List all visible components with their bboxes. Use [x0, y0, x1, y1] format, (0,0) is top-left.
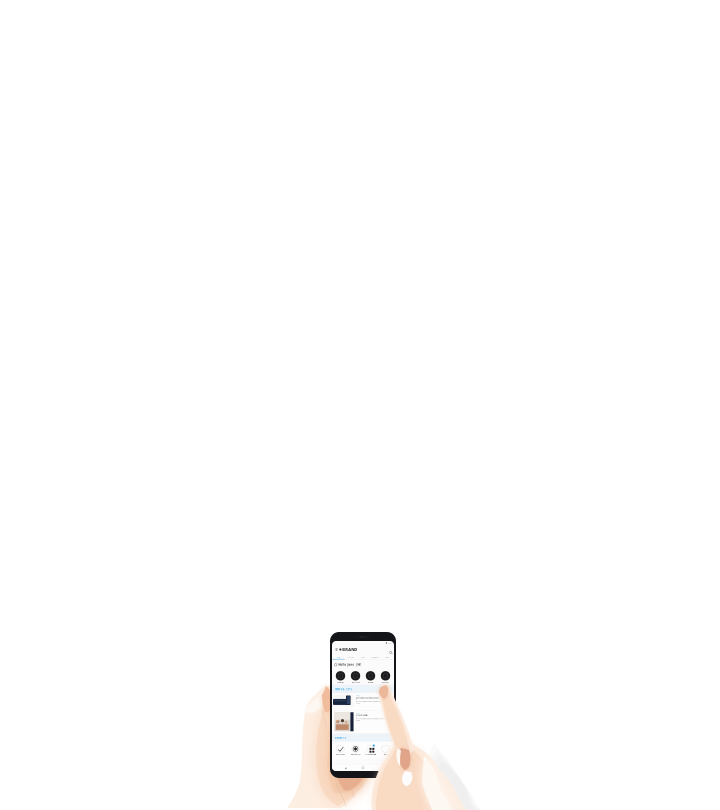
staticText: Contact Us — [337, 682, 344, 683]
staticText: Discover the tips and tricks that make e… — [356, 701, 389, 704]
button[interactable]: Contact Us — [333, 671, 348, 683]
button[interactable]: Back — [376, 765, 384, 771]
button[interactable]: Benefits — [363, 671, 378, 683]
staticText: Account and bills — [365, 754, 376, 755]
button[interactable]: Menu — [333, 645, 339, 654]
staticText: My account — [351, 682, 359, 683]
staticText: Benefits — [367, 682, 373, 683]
staticText: Hello Jane | Hi! — [338, 663, 361, 666]
staticText: BRAND — [341, 647, 357, 652]
staticText: Around the family — [356, 714, 368, 716]
staticText: My services — [336, 754, 345, 755]
staticText: NEWS — [356, 695, 360, 697]
staticText: › — [390, 736, 391, 739]
button[interactable]: Recents — [341, 765, 349, 771]
button[interactable]: More — [378, 745, 393, 755]
staticText: HOME — [337, 656, 341, 658]
staticText: BENEFITS — [334, 736, 345, 739]
button[interactable]: SHOP — [357, 654, 369, 659]
button[interactable]: Home — [359, 765, 367, 771]
button[interactable]: Offers for you — [348, 745, 363, 755]
button[interactable]: NEWS — [332, 693, 394, 710]
staticText: NEWS — [356, 712, 360, 714]
staticText: NEWS & TIPS — [334, 687, 351, 691]
staticText: 12:45 — [387, 642, 391, 644]
button[interactable]: MORE — [381, 654, 393, 659]
button[interactable]: NEWS — [332, 710, 394, 733]
button[interactable]: HOME — [332, 654, 345, 659]
staticText: MORE — [385, 656, 389, 658]
staticText: › — [390, 687, 391, 691]
button[interactable]: My services — [333, 745, 348, 755]
button[interactable]: Search — [386, 645, 392, 654]
staticText: SUPPORT — [347, 656, 354, 658]
staticText: Get the most out of your phone — [356, 697, 379, 699]
staticText: SHOP — [361, 656, 365, 658]
staticText: More — [383, 754, 387, 755]
staticText: ◢ — [344, 766, 346, 769]
staticText: My orders — [381, 682, 389, 683]
button[interactable]: My orders — [378, 671, 393, 683]
staticText: Offers for you — [350, 754, 360, 755]
button[interactable]: Account and bills — [363, 745, 378, 755]
button[interactable]: My account — [348, 671, 363, 683]
staticText: COMMUNITY — [371, 656, 379, 658]
button[interactable]: COMMUNITY — [369, 654, 381, 659]
button[interactable]: SUPPORT — [345, 654, 357, 659]
staticText: Discover the tips and tricks that make e… — [356, 718, 389, 721]
